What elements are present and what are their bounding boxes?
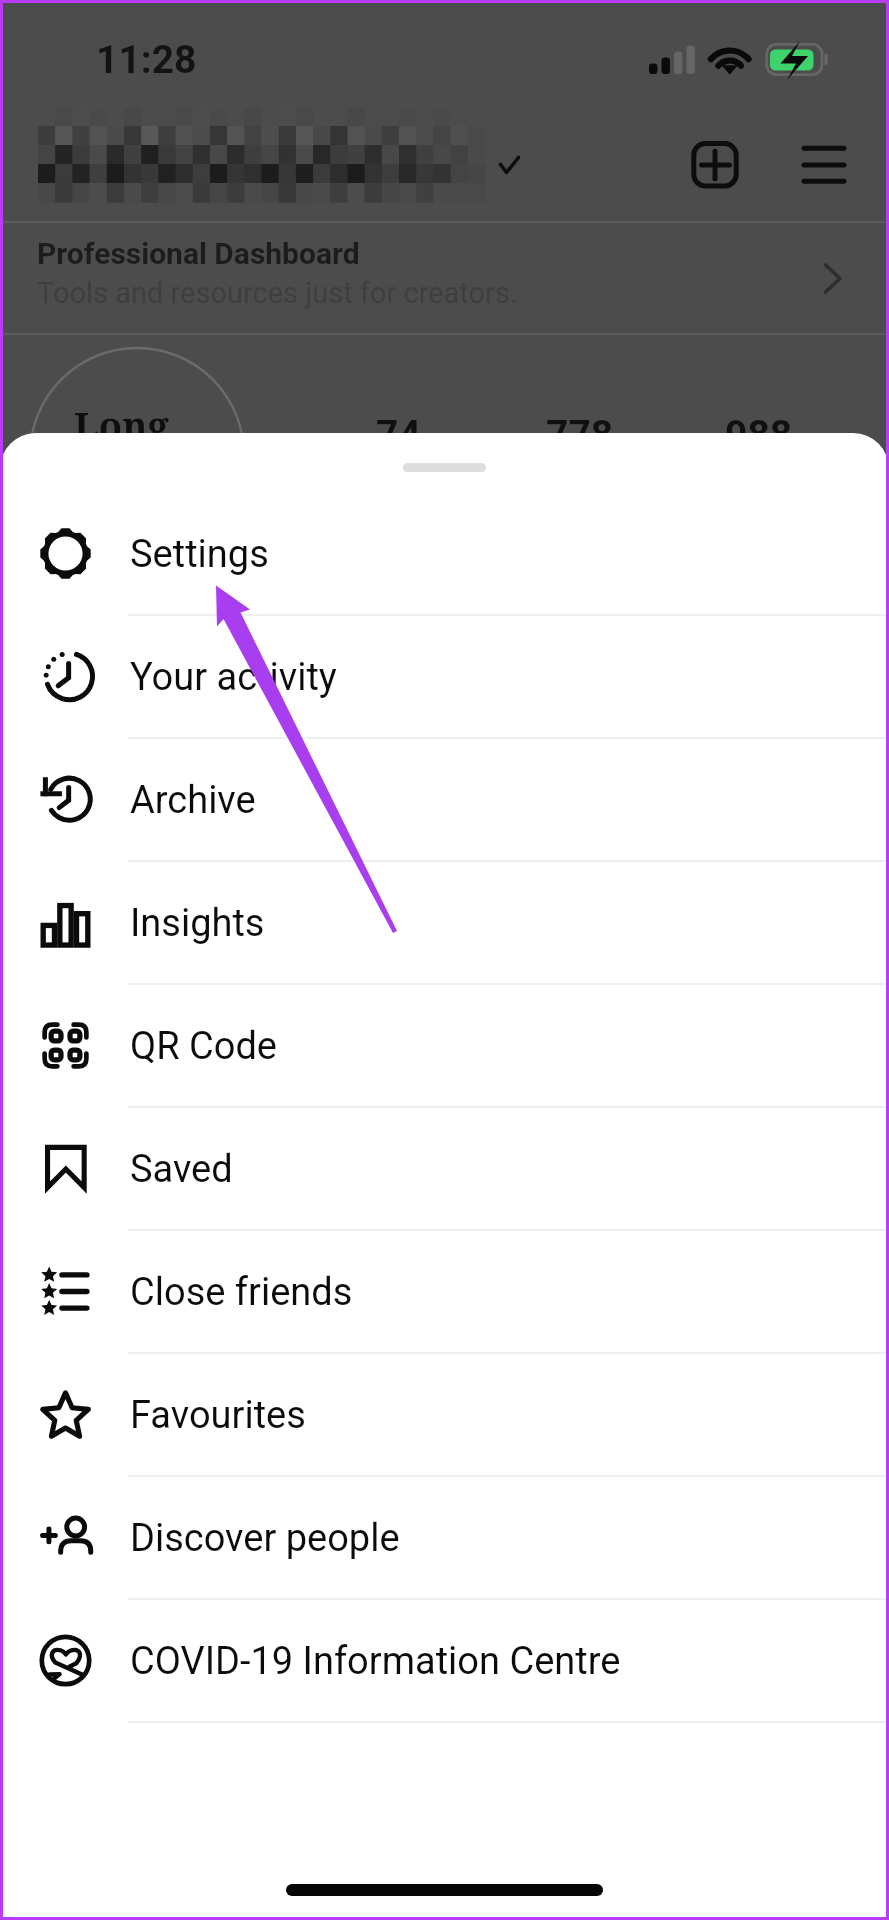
staticText: Your activity (130, 655, 337, 700)
other: Settings (40, 528, 91, 579)
other: Saved (40, 1143, 91, 1194)
staticText: Saved (130, 1147, 233, 1192)
button[interactable]: Saved (0, 1108, 889, 1231)
button[interactable]: Favourites (0, 1354, 889, 1477)
other: QR Code (40, 1020, 91, 1071)
staticText: Professional Dashboard (37, 236, 360, 271)
button[interactable]: QR Code (0, 985, 889, 1108)
button[interactable]: Discover people (0, 1477, 889, 1600)
staticText: 11:28 (96, 37, 197, 83)
button[interactable]: Settings (0, 493, 889, 616)
other: Your activity (40, 651, 91, 702)
staticText: Archive (130, 778, 256, 823)
staticText: 988 (725, 412, 793, 458)
staticText: Discover people (130, 1516, 400, 1561)
button[interactable]: COVID-19 Information Centre (0, 1600, 889, 1723)
other: COVID-19 Information Centre (40, 1635, 91, 1686)
staticText: Favourites (130, 1393, 306, 1438)
other: Discover people (40, 1512, 91, 1563)
button[interactable]: Close friends (0, 1231, 889, 1354)
staticText: 74 (376, 412, 421, 458)
staticText: COVID-19 Information Centre (130, 1639, 621, 1684)
button[interactable]: Archive (0, 739, 889, 862)
staticText: Long (74, 399, 169, 451)
other: Close friends (40, 1266, 91, 1317)
button[interactable]: Insights (0, 862, 889, 985)
other: Insights (40, 897, 91, 948)
other: Favourites (40, 1389, 91, 1440)
staticText: Settings (130, 532, 269, 577)
button[interactable]: Your activity (0, 616, 889, 739)
staticText: QR Code (130, 1024, 277, 1069)
staticText: Insights (130, 901, 265, 946)
staticText: 778 (546, 412, 614, 458)
staticText: Tools and resources just for creators. (37, 276, 518, 310)
staticText: Close friends (130, 1270, 353, 1315)
other: Archive (40, 774, 91, 825)
